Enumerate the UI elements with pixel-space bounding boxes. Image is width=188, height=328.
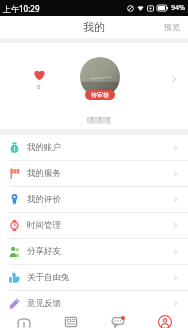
button[interactable]: 订单: [47, 316, 94, 328]
button[interactable]: 时间管理: [0, 213, 188, 238]
staticText: 嘿嘿嘿: [87, 115, 111, 125]
button[interactable]: 我的评价: [0, 187, 188, 212]
button[interactable]: 首页: [0, 316, 47, 328]
staticText: 上午10:29: [3, 3, 40, 14]
staticText: 我的服务: [27, 168, 61, 179]
staticText: 我的账户: [27, 142, 61, 153]
button[interactable]: 0: [0, 43, 188, 115]
button[interactable]: 我的账户: [0, 135, 188, 160]
staticText: 我的评价: [27, 194, 61, 205]
button[interactable]: 预览: [156, 18, 188, 36]
staticText: 94%: [171, 3, 185, 13]
button[interactable]: 关于自由兔: [0, 265, 188, 290]
staticText: 我的: [83, 20, 105, 34]
staticText: 意见反馈: [27, 298, 61, 309]
button[interactable]: 意见反馈: [0, 291, 188, 316]
button[interactable]: 我的: [141, 316, 188, 328]
staticText: 0: [37, 83, 41, 91]
button[interactable]: 消息: [94, 316, 141, 328]
staticText: 时间管理: [27, 220, 61, 231]
staticText: 关于自由兔: [27, 272, 70, 283]
staticText: 待审核: [91, 91, 109, 99]
button[interactable]: 分享好友: [0, 239, 188, 264]
staticText: 预览: [164, 22, 180, 32]
button[interactable]: 我的服务: [0, 161, 188, 186]
staticText: 分享好友: [27, 246, 61, 257]
